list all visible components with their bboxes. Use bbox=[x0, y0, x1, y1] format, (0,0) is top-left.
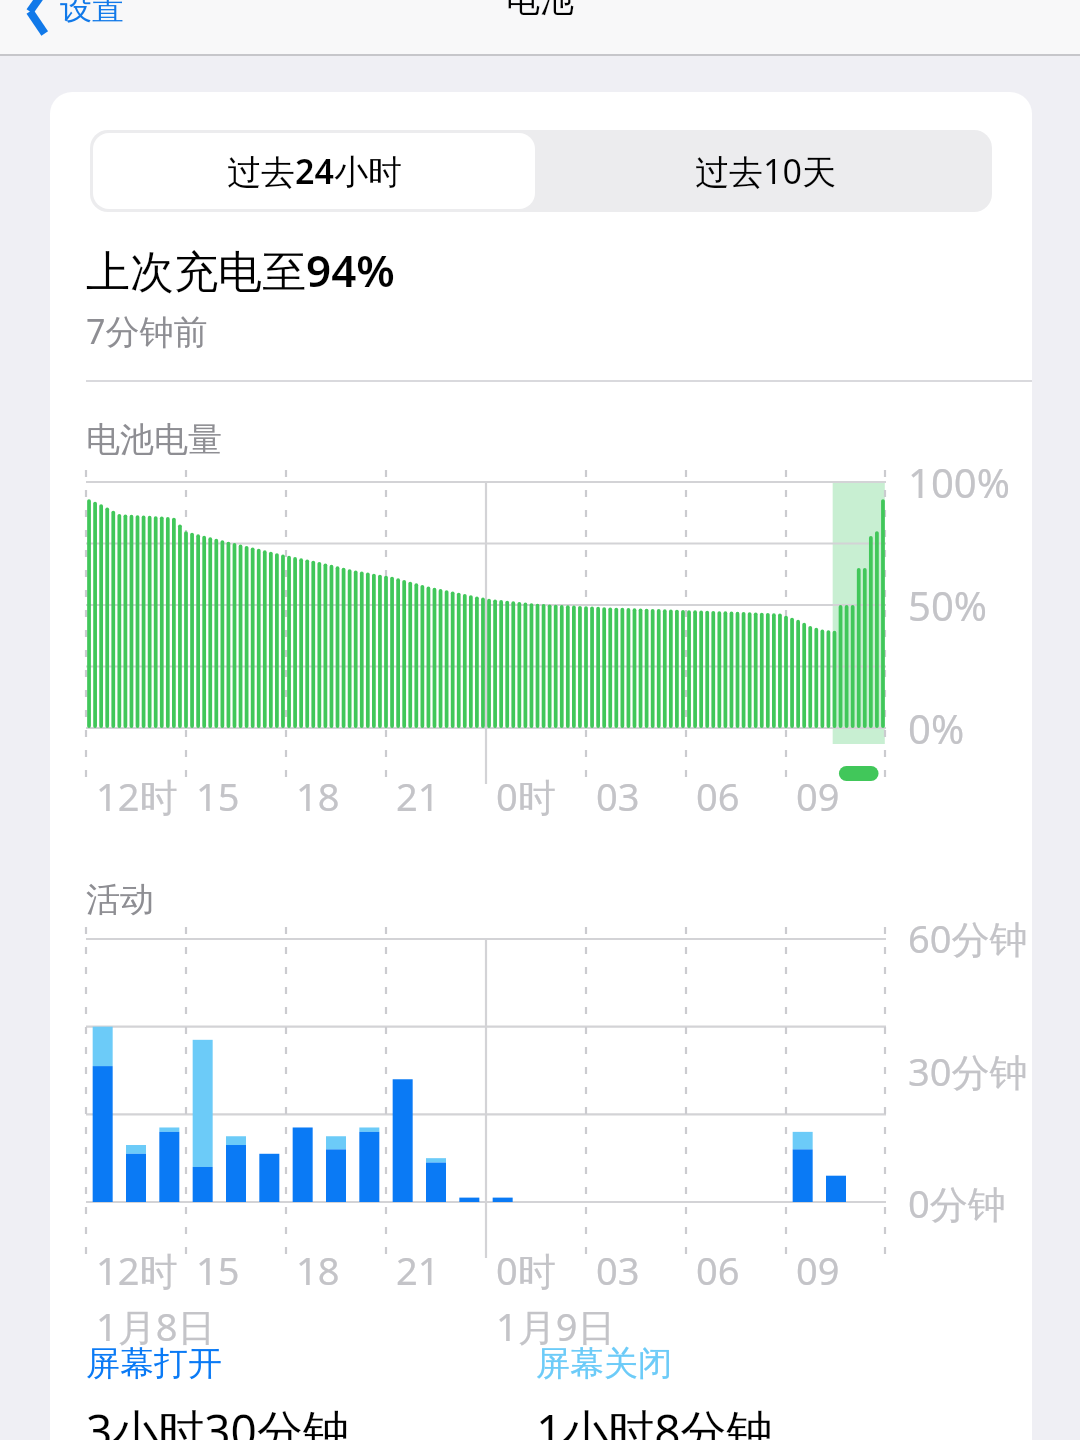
staticText: 09 bbox=[796, 770, 840, 822]
staticText: 15 bbox=[196, 770, 240, 822]
staticText: 21 bbox=[396, 1244, 440, 1296]
staticText: 过去24小时 bbox=[227, 148, 402, 194]
staticText: 30分钟 bbox=[908, 1045, 1028, 1097]
button[interactable]: 屏幕关闭 bbox=[536, 1342, 773, 1440]
staticText: 7分钟前 bbox=[86, 308, 208, 354]
staticText: 0时 bbox=[496, 1244, 556, 1296]
button[interactable]: 屏幕打开 bbox=[86, 1342, 349, 1440]
button[interactable]: 返回 bbox=[20, 0, 130, 36]
staticText: 3小时30分钟 bbox=[86, 1399, 349, 1440]
button[interactable]: 过去10天 bbox=[542, 133, 989, 209]
staticText: 1月9日 bbox=[496, 1300, 616, 1352]
staticText: 0时 bbox=[496, 770, 556, 822]
staticText: 18 bbox=[296, 1244, 340, 1296]
staticText: 06 bbox=[696, 1244, 740, 1296]
staticText: 09 bbox=[796, 1244, 840, 1296]
staticText: 活动 bbox=[86, 878, 154, 921]
staticText: 0分钟 bbox=[908, 1177, 1006, 1229]
staticText: 屏幕关闭 bbox=[536, 1342, 672, 1385]
staticText: 设置 bbox=[60, 0, 124, 28]
staticText: 上次充电至94% bbox=[86, 240, 395, 300]
staticText: 15 bbox=[196, 1244, 240, 1296]
staticText: 电池 bbox=[506, 0, 574, 21]
staticText: 1月8日 bbox=[96, 1300, 216, 1352]
staticText: 1小时8分钟 bbox=[536, 1399, 773, 1440]
staticText: 60分钟 bbox=[908, 912, 1028, 964]
button[interactable]: 过去24小时 bbox=[93, 133, 535, 209]
staticText: 屏幕打开 bbox=[86, 1342, 222, 1385]
staticText: 12时 bbox=[96, 1244, 178, 1296]
staticText: 18 bbox=[296, 770, 340, 822]
staticText: 过去10天 bbox=[695, 148, 836, 194]
staticText: 12时 bbox=[96, 770, 178, 822]
staticText: 0% bbox=[908, 701, 965, 755]
staticText: 06 bbox=[696, 770, 740, 822]
staticText: 03 bbox=[596, 770, 640, 822]
staticText: 21 bbox=[396, 770, 440, 822]
staticText: 电池电量 bbox=[86, 418, 222, 461]
staticText: 50% bbox=[908, 578, 987, 632]
staticText: 100% bbox=[908, 455, 1010, 509]
other: 返回 bbox=[26, 0, 50, 30]
staticText: 03 bbox=[596, 1244, 640, 1296]
